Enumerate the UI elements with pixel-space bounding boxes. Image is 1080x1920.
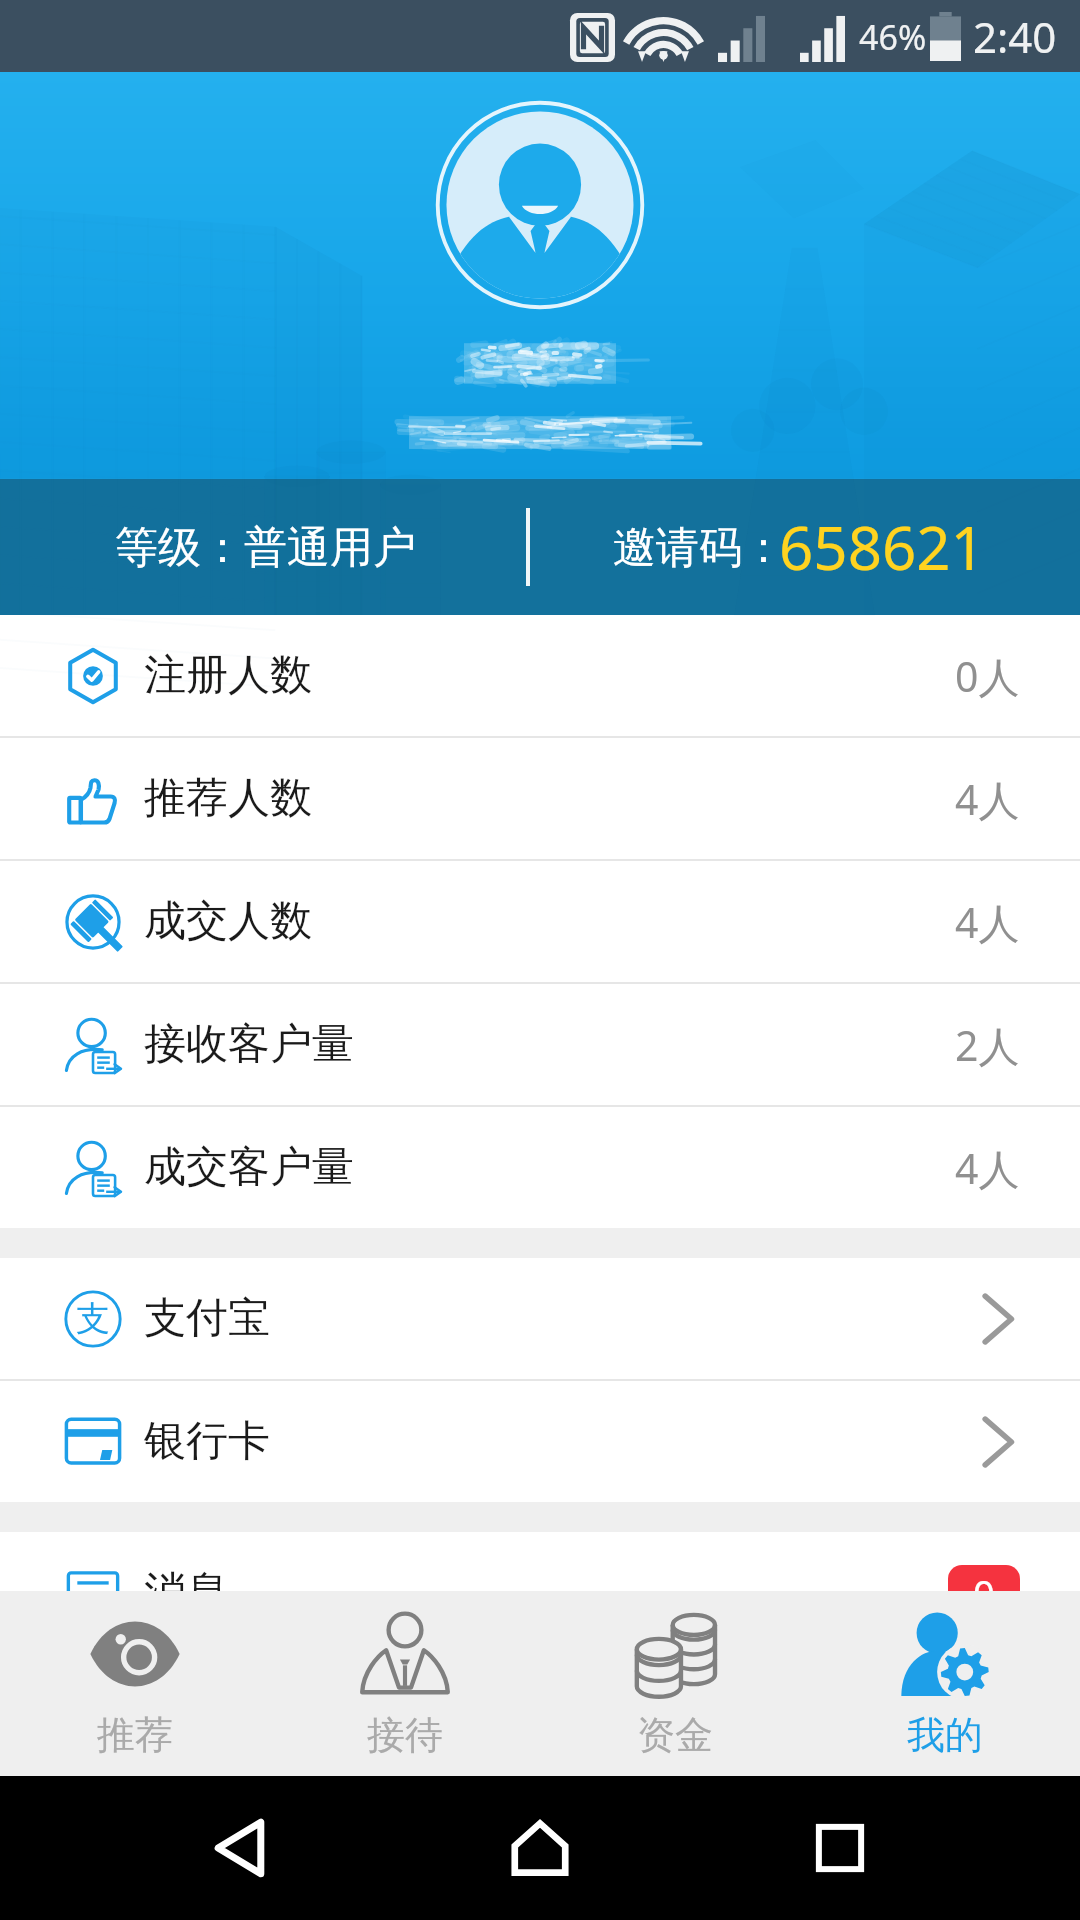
staticText: 消息 (144, 1566, 228, 1591)
button[interactable]: 推荐人数 (0, 738, 1080, 859)
staticText: 2:40 (973, 8, 1057, 65)
button[interactable]: Recent apps (788, 1796, 892, 1900)
button[interactable]: 支 (0, 1258, 1080, 1379)
other: Open (982, 1416, 1014, 1468)
button[interactable]: 消息 (0, 1532, 1080, 1591)
staticText: 注册人数 (144, 649, 312, 702)
staticText: 4人 (955, 771, 1020, 827)
staticText: 2人 (955, 1017, 1020, 1073)
button[interactable]: Back (188, 1796, 292, 1900)
staticText: 0人 (955, 648, 1020, 704)
other: Open (982, 1293, 1014, 1345)
staticText: 接待 (367, 1711, 443, 1759)
staticText: 邀请码： (613, 521, 785, 575)
button[interactable]: 推荐 (0, 1591, 270, 1776)
button[interactable]: 成交人数 (0, 861, 1080, 982)
staticText: 银行卡 (144, 1415, 270, 1468)
staticText: 46% (859, 14, 927, 60)
button[interactable]: 成交客户量 (0, 1107, 1080, 1228)
button[interactable]: 我的 (810, 1591, 1080, 1776)
staticText: 4人 (955, 1140, 1020, 1196)
button[interactable]: 资金 (540, 1591, 810, 1776)
button[interactable]: 注册人数 (0, 615, 1080, 736)
staticText: 推荐人数 (144, 772, 312, 825)
button[interactable]: Home (488, 1796, 592, 1900)
button[interactable]: 银行卡 (0, 1381, 1080, 1502)
staticText: 成交人数 (144, 895, 312, 948)
staticText: 0 (973, 1567, 995, 1591)
staticText: 推荐 (97, 1711, 173, 1759)
staticText: 成交客户量 (144, 1141, 354, 1194)
staticText: 658621 (779, 506, 985, 588)
staticText: 4人 (955, 894, 1020, 950)
button[interactable]: 接收客户量 (0, 984, 1080, 1105)
staticText: 等级：普通用户 (115, 521, 416, 575)
staticText: 我的 (907, 1711, 983, 1759)
staticText: 接收客户量 (144, 1018, 354, 1071)
staticText: 支 (76, 1297, 110, 1340)
staticText: 支付宝 (144, 1292, 270, 1345)
button[interactable]: 接待 (270, 1591, 540, 1776)
staticText: 资金 (637, 1711, 713, 1759)
